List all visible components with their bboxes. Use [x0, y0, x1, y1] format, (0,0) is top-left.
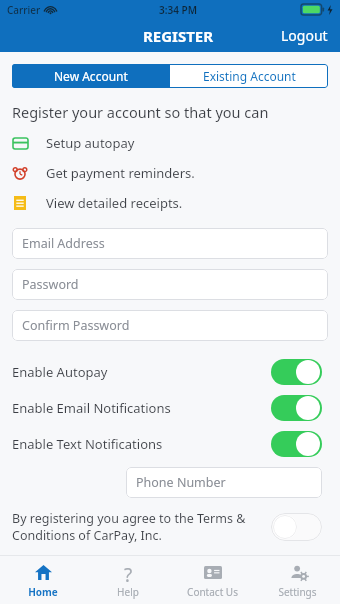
staticText: By registering you agree to the Terms & … [12, 510, 271, 543]
button[interactable]: Home [0, 556, 85, 604]
staticText: Enable Text Notifications [12, 435, 163, 453]
button[interactable]: Contact Us [170, 556, 255, 604]
staticText: Logout [281, 26, 328, 45]
button[interactable]: Toggle on [271, 359, 322, 385]
button[interactable]: ? [85, 556, 170, 604]
staticText: Home [28, 585, 58, 599]
staticText: REGISTER [143, 26, 214, 46]
staticText: Get payment reminders. [46, 164, 195, 182]
staticText: Enable Email Notifications [12, 399, 171, 417]
button[interactable]: Toggle on [271, 431, 322, 457]
staticText: 3:34 PM [159, 3, 197, 17]
button[interactable]: New Account [12, 64, 170, 88]
staticText: Help [117, 585, 139, 599]
staticText: ? [124, 562, 133, 582]
staticText: Password [22, 276, 79, 293]
button[interactable]: Logout [269, 20, 340, 51]
staticText: Enable Autopay [12, 363, 108, 381]
button[interactable]: Toggle on [271, 395, 322, 421]
staticText: Confirm Password [22, 317, 130, 334]
button[interactable]: Toggle off [271, 513, 322, 541]
button[interactable]: Email Address [12, 228, 328, 259]
staticText: Contact Us [187, 585, 238, 599]
staticText: View detailed receipts. [46, 194, 183, 212]
staticText: Register your account so that you can [12, 102, 269, 122]
button[interactable]: Phone Number [126, 467, 322, 498]
staticText: New Account [54, 68, 128, 84]
button[interactable]: Settings [255, 556, 340, 604]
staticText: Setup autopay [46, 134, 135, 152]
staticText: Carrier [7, 3, 41, 17]
staticText: Phone Number [136, 474, 226, 491]
button[interactable]: Password [12, 269, 328, 300]
staticText: Settings [278, 585, 317, 599]
staticText: Existing Account [203, 68, 296, 84]
staticText: Email Address [22, 235, 105, 252]
button[interactable]: Existing Account [170, 64, 328, 88]
button[interactable]: Confirm Password [12, 310, 328, 341]
